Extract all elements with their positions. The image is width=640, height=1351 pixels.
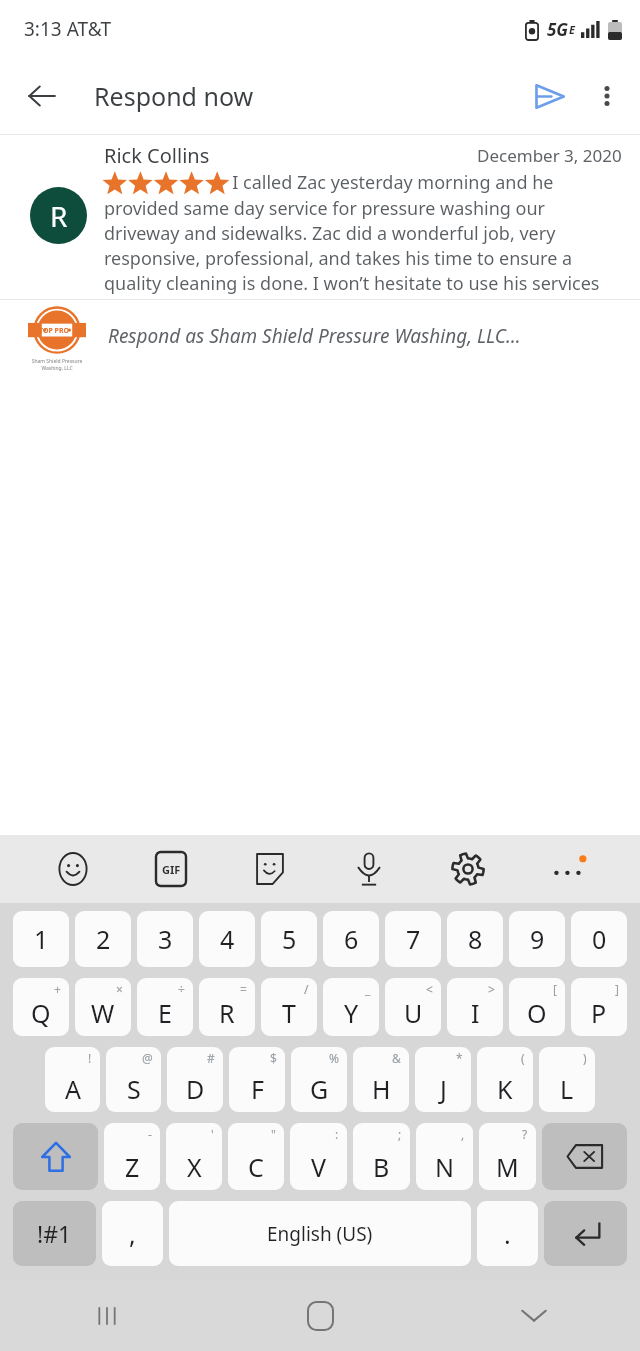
button[interactable]: ] [571,978,627,1036]
button[interactable]: Settings [418,839,517,899]
button[interactable]: [ [509,978,565,1036]
staticText: December 3, 2020 [477,144,622,167]
button[interactable]: 7 [385,911,441,967]
staticText: S [127,1072,141,1106]
button[interactable]: Shift [13,1123,98,1190]
staticText: " [271,1126,276,1142]
staticText: W [91,996,115,1030]
staticText: [ [553,981,557,997]
staticText: * [456,1050,463,1066]
button[interactable]: @ [106,1047,161,1112]
button[interactable]: 9 [509,911,565,967]
staticText: 1 [34,922,49,956]
button[interactable]: Home [214,1280,427,1351]
button[interactable]: > [447,978,503,1036]
staticText: Q [31,996,51,1030]
button[interactable]: # [167,1047,223,1112]
button[interactable]: TOP PRO [0,300,640,388]
staticText: ! [88,1050,92,1066]
button[interactable]: 2 [75,911,131,967]
staticText: _ [365,981,371,997]
button[interactable]: Enter [544,1201,627,1266]
button[interactable]: : [290,1123,347,1190]
staticText: C [248,1150,264,1184]
button[interactable]: % [291,1047,347,1112]
button[interactable]: Voice input [319,839,418,899]
staticText: 9 [530,922,545,956]
staticText: E [158,996,172,1030]
button[interactable]: More options [578,67,636,125]
staticText: 3:13 AT&T [24,16,111,42]
staticText: D [186,1072,205,1106]
staticText: , [129,1217,136,1251]
button[interactable]: . [477,1201,538,1266]
button[interactable]: 6 [323,911,379,967]
button[interactable]: × [75,978,131,1036]
button[interactable]: 1 [13,911,69,967]
staticText: 5G [547,18,569,41]
button[interactable]: 0 [571,911,627,967]
button[interactable]: - [104,1123,160,1190]
button[interactable]: GIF [122,839,220,899]
button[interactable]: More options [517,839,616,899]
button[interactable]: 3 [137,911,193,967]
button[interactable]: ÷ [137,978,193,1036]
staticText: # [207,1050,215,1066]
staticText: Rick Collins [104,142,210,169]
staticText: × [116,981,123,997]
button[interactable]: " [228,1123,284,1190]
staticText: 5 [282,922,297,956]
staticText: P [591,996,607,1030]
staticText: F [251,1072,264,1106]
button[interactable]: Stickers [220,839,319,899]
button[interactable]: * [415,1047,471,1112]
staticText: I called Zac yesterday morning and he pr… [104,170,604,334]
staticText: R [219,996,235,1030]
staticText: ' [211,1126,214,1142]
staticText: ? [522,1126,528,1142]
staticText: I [471,996,480,1030]
staticText: = [240,981,247,997]
button[interactable]: ' [166,1123,222,1190]
button[interactable]: 4 [199,911,255,967]
button[interactable]: , [416,1123,473,1190]
button[interactable]: !#1 [13,1201,96,1266]
staticText: . [504,1217,511,1251]
button[interactable]: English (US) [169,1201,471,1266]
button[interactable]: $ [229,1047,285,1112]
staticText: - [148,1126,152,1142]
button[interactable]: ? [479,1123,536,1190]
button[interactable]: Send [520,67,578,125]
staticText: , [461,1126,465,1142]
button[interactable]: , [102,1201,163,1266]
staticText: R [50,197,68,235]
staticText: O [527,996,547,1030]
staticText: TOP PRO [39,326,70,336]
button[interactable]: < [385,978,441,1036]
button[interactable]: / [261,978,317,1036]
button[interactable]: Hide keyboard [427,1280,640,1351]
button[interactable]: ! [45,1047,100,1112]
button[interactable]: Back [14,68,70,124]
button[interactable]: + [13,978,69,1036]
button[interactable]: ; [353,1123,410,1190]
button[interactable]: Recent apps [0,1280,214,1351]
staticText: ( [521,1050,525,1066]
button[interactable]: 8 [447,911,503,967]
staticText: U [404,996,423,1030]
staticText: Y [344,996,359,1030]
staticText: 3 [158,922,173,956]
button[interactable]: ( [477,1047,533,1112]
staticText: T [282,996,296,1030]
staticText: 2 [96,922,111,956]
staticText: N [435,1150,455,1184]
button[interactable]: _ [323,978,379,1036]
button[interactable]: Backspace [542,1123,627,1190]
staticText: B [373,1150,390,1184]
button[interactable]: & [353,1047,409,1112]
button[interactable]: ) [539,1047,595,1112]
button[interactable]: Emoji [24,839,122,899]
staticText: Sham Shield Pressure Washing, LLC [31,358,83,372]
button[interactable]: = [199,978,255,1036]
button[interactable]: 5 [261,911,317,967]
